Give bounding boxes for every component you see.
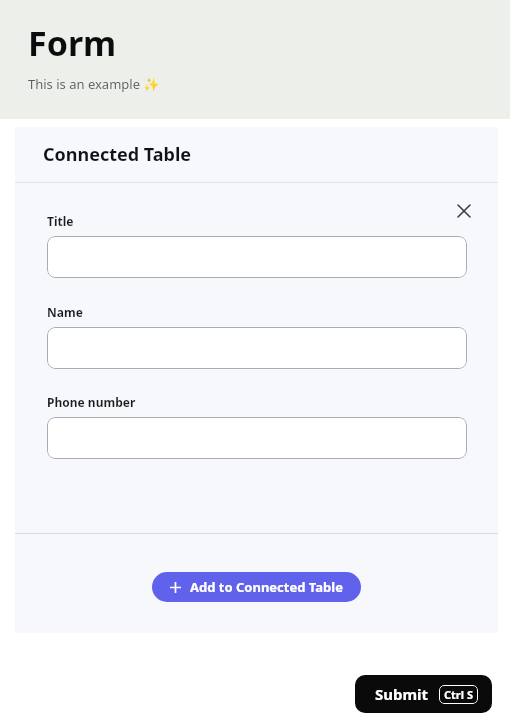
staticText: Title bbox=[47, 213, 74, 229]
button[interactable] bbox=[47, 417, 467, 459]
button[interactable] bbox=[47, 236, 467, 278]
staticText: Add to Connected Table bbox=[190, 578, 343, 596]
staticText: Form bbox=[28, 20, 117, 66]
button[interactable]: Submit bbox=[355, 675, 492, 713]
button[interactable]: Add to Connected Table bbox=[152, 572, 361, 602]
staticText: Submit bbox=[375, 684, 429, 704]
staticText: Connected Table bbox=[43, 142, 192, 167]
staticText: Name bbox=[47, 304, 83, 320]
button[interactable]: Close bbox=[450, 197, 478, 225]
button[interactable] bbox=[47, 327, 467, 369]
staticText: This is an example ✨ bbox=[28, 75, 160, 93]
staticText: Ctrl S bbox=[444, 687, 473, 702]
staticText: Phone number bbox=[47, 394, 136, 410]
